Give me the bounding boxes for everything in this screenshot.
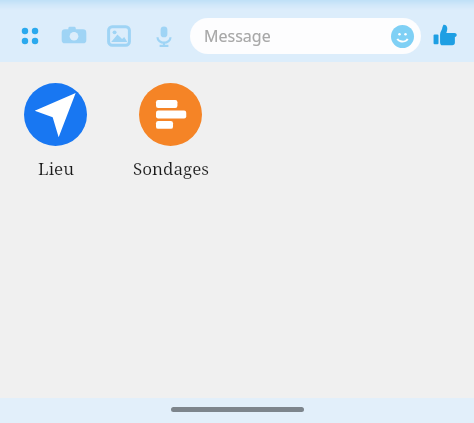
- button[interactable]: Send like: [426, 17, 464, 55]
- staticText: Lieu: [38, 157, 74, 180]
- staticText: Sondages: [133, 157, 209, 180]
- button[interactable]: Message: [190, 18, 421, 54]
- button[interactable]: Lieu: [8, 81, 103, 182]
- button[interactable]: Emoji: [389, 23, 415, 49]
- other: Sondages: [139, 83, 202, 146]
- button[interactable]: More apps: [14, 20, 46, 52]
- button[interactable]: Camera: [57, 19, 91, 53]
- button[interactable]: Sondages: [123, 81, 218, 182]
- button[interactable]: Gallery: [102, 19, 136, 53]
- other: Lieu: [24, 83, 87, 146]
- staticText: Message: [204, 25, 389, 47]
- button[interactable]: Voice message: [147, 19, 181, 53]
